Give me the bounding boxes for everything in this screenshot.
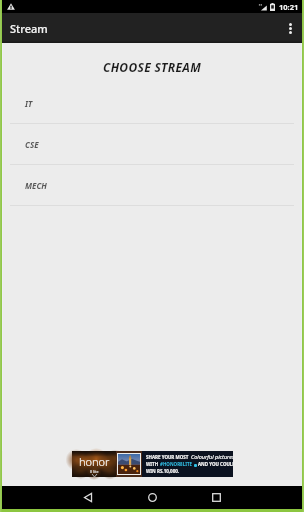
button[interactable]: CSE [0,124,304,165]
staticText: AND YOU COULD [198,461,233,467]
staticText: CSE [25,139,39,150]
button[interactable]: More options [280,13,304,43]
button[interactable]: Home [136,486,168,509]
staticText: SHARE YOUR MOST [146,454,189,460]
button[interactable]: honor [72,451,233,477]
button[interactable]: Recent apps [200,486,232,509]
button[interactable]: MECH [0,165,304,206]
button[interactable]: Back [72,486,104,509]
staticText: WIN RS.10,000. [146,468,180,474]
staticText: WITH [146,461,160,467]
staticText: 8 lite [90,469,99,474]
staticText: honor [79,454,110,469]
staticText: CHOOSE STREAM [0,59,304,75]
staticText: Stream [10,21,48,36]
staticText: MECH [25,180,47,191]
staticText: Colourful pictures [191,453,233,460]
staticText: 10:21 [279,2,299,12]
staticText: #HONOR8LITE [160,461,193,467]
button[interactable]: IT [0,83,304,124]
staticText: IT [25,98,33,109]
